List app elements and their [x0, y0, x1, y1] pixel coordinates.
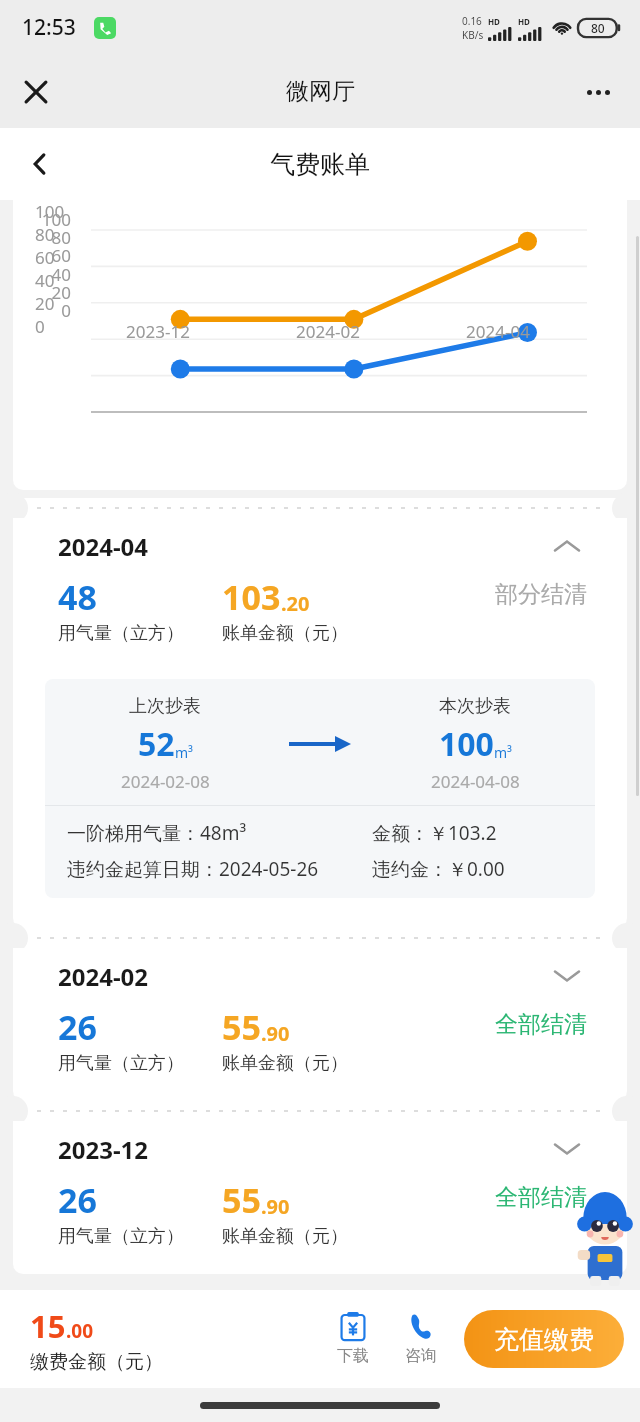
staticText: 2023-12 — [108, 320, 208, 343]
staticText: 2024-04 — [448, 320, 548, 343]
staticText: 2024-02-08 — [121, 770, 210, 793]
button[interactable]: 关闭 — [10, 66, 62, 118]
staticText: 0 — [31, 299, 71, 322]
staticText: .00 — [66, 1318, 94, 1344]
button[interactable]: 2024-04 — [13, 518, 627, 574]
staticText: 金额：￥103.2 — [372, 820, 497, 846]
staticText: 2024-02 — [278, 320, 378, 343]
staticText: 部分结清 — [495, 580, 587, 609]
button[interactable]: 充值缴费 — [464, 1310, 624, 1368]
staticText: m³ — [175, 743, 193, 762]
staticText: 20 — [31, 281, 71, 304]
staticText: 本次抄表 — [439, 695, 511, 718]
staticText: 咨询 — [405, 1346, 437, 1366]
staticText: 0.16 — [462, 14, 482, 28]
staticText: 全部结清 — [495, 1183, 587, 1212]
staticText: 55 — [222, 1004, 261, 1050]
staticText: 80 — [35, 223, 55, 246]
staticText: 80 — [31, 226, 71, 249]
staticText: 60 — [35, 246, 55, 269]
staticText: 下载 — [337, 1346, 369, 1366]
staticText: .90 — [261, 1020, 290, 1047]
staticText: 2023-12 — [58, 1133, 149, 1166]
staticText: 气费账单 — [270, 149, 370, 180]
staticText: 2024-04 — [58, 530, 149, 563]
staticText: 账单金额（元） — [222, 622, 348, 645]
staticText: 全部结清 — [495, 1010, 587, 1039]
staticText: 2024-02 — [58, 960, 149, 993]
button[interactable]: 返回 — [14, 138, 66, 190]
staticText: 103 — [222, 574, 281, 620]
staticText: 52 — [138, 722, 175, 766]
staticText: 26 — [58, 1177, 97, 1223]
button[interactable]: 2024-02 — [13, 948, 627, 1004]
staticText: 20 — [35, 292, 55, 315]
staticText: 微网厅 — [286, 77, 355, 106]
staticText: 账单金额（元） — [222, 1225, 348, 1248]
staticText: 15 — [30, 1305, 66, 1347]
staticText: HD — [488, 16, 500, 27]
staticText: m³ — [494, 743, 512, 762]
staticText: 缴费金额（元） — [30, 1350, 163, 1374]
staticText: 100 — [35, 200, 65, 223]
staticText: 60 — [31, 244, 71, 267]
staticText: 40 — [31, 263, 71, 286]
staticText: KB/s — [462, 28, 484, 42]
staticText: 100 — [439, 722, 494, 766]
staticText: 55 — [222, 1177, 261, 1223]
staticText: 上次抄表 — [129, 695, 201, 718]
button[interactable]: 2023-12 — [13, 1121, 627, 1177]
button[interactable]: 下载 — [324, 1312, 382, 1366]
staticText: 一阶梯用气量：48m³ — [67, 820, 247, 846]
staticText: 12:53 — [22, 13, 76, 42]
staticText: .90 — [261, 1193, 290, 1220]
staticText: 80 — [591, 20, 605, 36]
staticText: 充值缴费 — [494, 1324, 594, 1355]
staticText: 账单金额（元） — [222, 1052, 348, 1075]
staticText: 用气量（立方） — [58, 1052, 184, 1075]
staticText: 2024-04-08 — [431, 770, 520, 793]
staticText: 违约金起算日期：2024-05-26 — [67, 856, 319, 882]
staticText: .20 — [281, 590, 310, 617]
staticText: 用气量（立方） — [58, 622, 184, 645]
staticText: HD — [518, 16, 530, 27]
staticText: 用气量（立方） — [58, 1225, 184, 1248]
staticText: 48 — [58, 574, 97, 620]
button[interactable]: 更多 — [572, 70, 624, 114]
staticText: 26 — [58, 1004, 97, 1050]
staticText: 0 — [35, 315, 45, 338]
staticText: 违约金：￥0.00 — [372, 856, 505, 882]
staticText: 100 — [31, 208, 71, 231]
button[interactable]: 咨询 — [392, 1312, 450, 1366]
staticText: 40 — [35, 269, 55, 292]
